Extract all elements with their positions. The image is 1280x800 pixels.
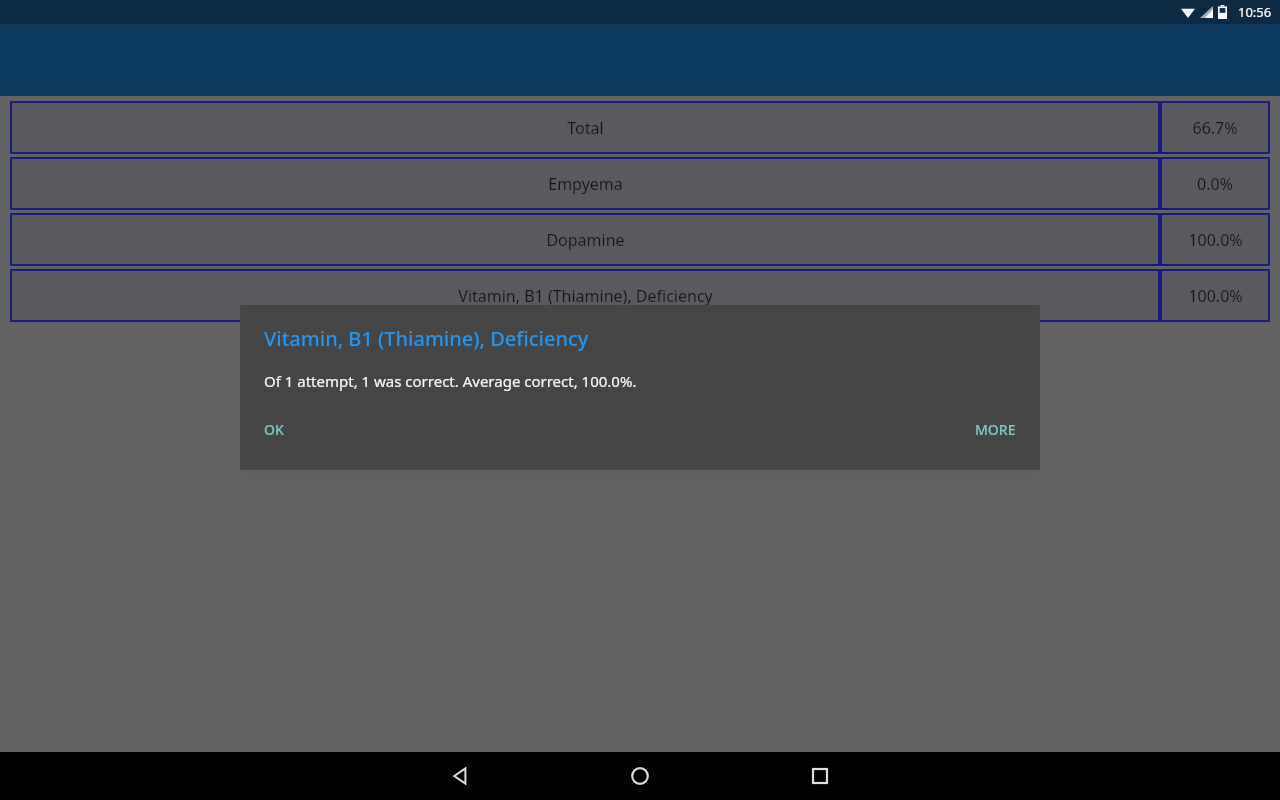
staticText: MORE [975, 420, 1016, 439]
staticText: 100.0% [1188, 285, 1243, 307]
button[interactable]: Home [550, 752, 730, 800]
staticText: OK [264, 420, 284, 439]
staticText: Dopamine [546, 229, 625, 251]
staticText: Of 1 attempt, 1 was correct. Average cor… [264, 371, 637, 391]
staticText: 0.0% [1197, 173, 1233, 195]
button[interactable]: OK [256, 412, 292, 447]
staticText: 10:56 [1238, 3, 1272, 21]
button[interactable]: MORE [967, 412, 1024, 447]
button[interactable]: Recent apps [730, 752, 910, 800]
button[interactable]: Vitamin, B1 (Thiamine), Deficiency [10, 269, 1270, 322]
staticText: Vitamin, B1 (Thiamine), Deficiency [458, 285, 713, 307]
staticText: 100.0% [1188, 229, 1243, 251]
button[interactable]: Total [10, 101, 1270, 154]
button[interactable]: Dopamine [10, 213, 1270, 266]
staticText: Total [567, 117, 604, 139]
button[interactable]: Back [370, 752, 550, 800]
staticText: Vitamin, B1 (Thiamine), Deficiency [264, 325, 589, 352]
staticText: 66.7% [1192, 117, 1238, 139]
button[interactable]: Empyema [10, 157, 1270, 210]
staticText: Empyema [548, 173, 623, 195]
